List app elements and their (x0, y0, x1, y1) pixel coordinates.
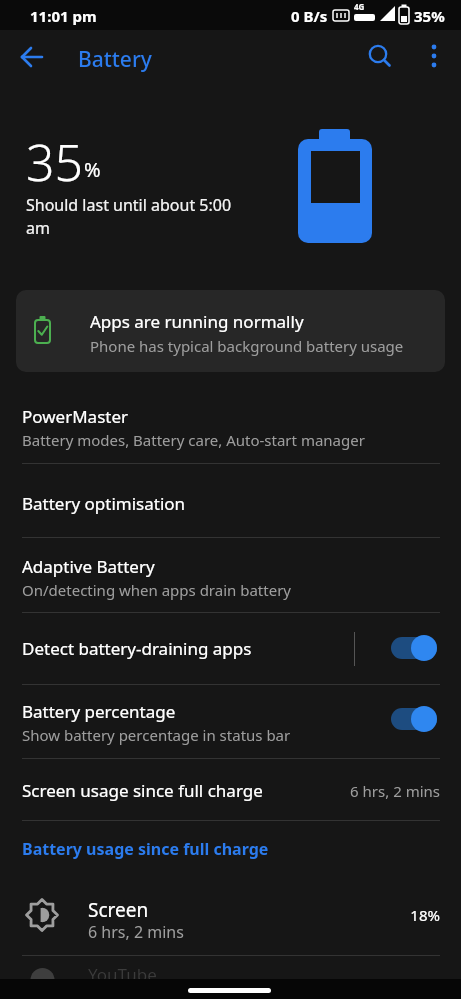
staticText: Show battery percentage in status bar (22, 725, 291, 745)
staticText: Phone has typical background battery usa… (90, 336, 404, 356)
staticText: 11:01 pm (30, 6, 97, 26)
staticText: 4G (354, 1, 365, 12)
button[interactable]: Battery optimisation (0, 463, 461, 537)
staticText: Battery usage since full charge (22, 838, 269, 860)
staticText: Battery modes, Battery care, Auto-start … (22, 430, 365, 450)
staticText: Apps are running normally (90, 310, 304, 333)
staticText: 6 hrs, 2 mins (88, 921, 184, 943)
button[interactable] (188, 988, 271, 993)
button[interactable]: Adaptive Battery (0, 537, 461, 612)
staticText: 0 B/s (291, 6, 328, 26)
staticText: % (84, 156, 101, 183)
button[interactable] (410, 32, 458, 80)
button[interactable] (8, 33, 56, 81)
staticText: Adaptive Battery (22, 555, 155, 578)
button[interactable] (356, 32, 404, 80)
button[interactable]: Screen (0, 870, 461, 955)
staticText: Battery percentage (22, 700, 176, 723)
staticText: Battery (78, 45, 152, 74)
staticText: Battery optimisation (22, 492, 186, 515)
button[interactable]: PowerMaster (0, 390, 461, 463)
button[interactable]: Detect battery-draining apps (0, 612, 461, 684)
staticText: 35 (26, 128, 84, 196)
button[interactable]: Battery percentage (0, 684, 461, 758)
button[interactable]: Screen usage since full charge (0, 758, 461, 820)
staticText: Screen (88, 897, 149, 923)
staticText: 35% (414, 6, 445, 26)
staticText: YouTube (88, 963, 157, 986)
staticText: PowerMaster (22, 405, 129, 428)
staticText: Detect battery-draining apps (22, 637, 252, 660)
staticText: Should last until about 5:00 am (26, 194, 256, 239)
staticText: Screen usage since full charge (22, 779, 263, 802)
staticText: 6 hrs, 2 mins (240, 781, 440, 801)
staticText: 18% (240, 905, 440, 925)
button[interactable]: Apps are running normally (16, 290, 445, 372)
staticText: On/detecting when apps drain battery (22, 580, 291, 600)
